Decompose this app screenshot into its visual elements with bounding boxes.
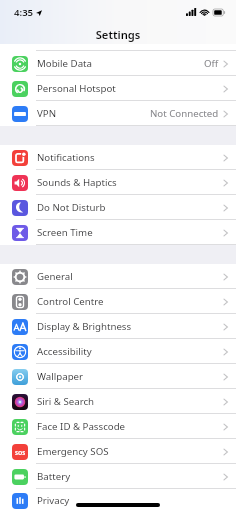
other: More [223, 85, 228, 93]
staticText: Emergency SOS [37, 445, 109, 458]
other: More [223, 229, 228, 237]
staticText: Face ID & Passcode [37, 420, 126, 433]
button[interactable]: Personal Hotspot [0, 76, 236, 101]
button[interactable]: SOS [0, 439, 236, 464]
staticText: Settings [0, 27, 236, 42]
staticText: Mobile Data [37, 57, 93, 70]
staticText: Screen Time [37, 226, 93, 239]
button[interactable]: Control Centre [0, 289, 236, 314]
button[interactable]: Sounds & Haptics [0, 170, 236, 195]
button[interactable]: General [0, 264, 236, 289]
button[interactable]: Mobile Data [0, 51, 236, 76]
other: More [223, 179, 228, 187]
button[interactable]: Notifications [0, 145, 236, 170]
other: More [223, 204, 228, 212]
other: More [223, 423, 228, 431]
staticText: Wallpaper [37, 370, 84, 383]
other: More [223, 323, 228, 331]
button[interactable]: Battery [0, 464, 236, 489]
button[interactable]: Screen Time [0, 220, 236, 245]
button[interactable]: Privacy [0, 489, 236, 512]
button[interactable]: Accessibility [0, 339, 236, 364]
staticText: Battery [37, 470, 71, 483]
staticText: Accessibility [37, 345, 92, 358]
other: More [223, 448, 228, 456]
button[interactable]: Do Not Disturb [0, 195, 236, 220]
staticText: General [37, 270, 73, 283]
other: More [223, 373, 228, 381]
staticText: Siri & Search [37, 395, 95, 408]
other: More [223, 110, 228, 118]
other: More [223, 398, 228, 406]
staticText: SOS [15, 449, 26, 456]
button[interactable]: Siri & Search [0, 389, 236, 414]
other: More [223, 348, 228, 356]
button[interactable]: Face ID & Passcode [0, 414, 236, 439]
other: More [223, 273, 228, 281]
staticText: Control Centre [37, 295, 104, 308]
staticText: Sounds & Haptics [37, 176, 117, 189]
staticText: VPN [37, 107, 57, 120]
button[interactable]: Wallpaper [0, 364, 236, 389]
other: More [223, 298, 228, 306]
button[interactable]: Display & Brightness [0, 314, 236, 339]
staticText: Do Not Disturb [37, 201, 106, 214]
staticText: Personal Hotspot [37, 82, 116, 95]
other: More [223, 154, 228, 162]
staticText: Notifications [37, 151, 95, 164]
staticText: Not Connected [150, 107, 219, 120]
staticText: Off [204, 57, 219, 70]
staticText: 4:35 [14, 6, 34, 19]
staticText: Privacy [37, 494, 70, 507]
button[interactable]: Bluetooth [0, 44, 236, 51]
button[interactable]: VPN [0, 101, 236, 126]
other: More [223, 60, 228, 68]
other: More [223, 473, 228, 481]
staticText: Display & Brightness [37, 320, 132, 333]
